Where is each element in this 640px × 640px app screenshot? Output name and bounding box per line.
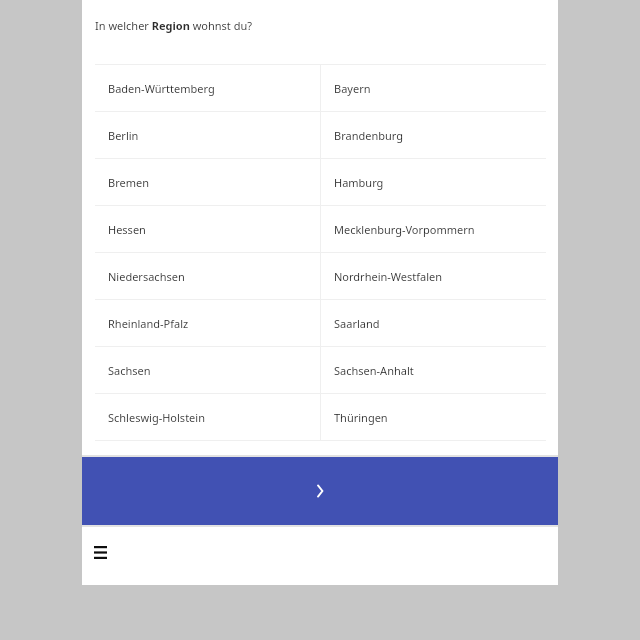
button[interactable]: Hamburg <box>321 159 546 205</box>
staticText: Thüringen <box>334 410 388 425</box>
staticText: Sachsen-Anhalt <box>334 363 414 378</box>
staticText: Bremen <box>108 175 149 190</box>
button[interactable]: Thüringen <box>321 394 546 440</box>
staticText: Schleswig-Holstein <box>108 410 205 425</box>
staticText: Sachsen <box>108 363 151 378</box>
staticText: Hamburg <box>334 175 384 190</box>
button[interactable]: Hessen <box>95 206 320 252</box>
button[interactable]: Schleswig-Holstein <box>95 394 320 440</box>
button[interactable]: Sachsen-Anhalt <box>321 347 546 393</box>
staticText: Niedersachsen <box>108 269 185 284</box>
button[interactable]: Nordrhein-Westfalen <box>321 253 546 299</box>
staticText: Baden-Württemberg <box>108 81 215 96</box>
staticText: In welcher Region wohnst du? <box>95 18 253 33</box>
button[interactable]: Bayern <box>321 65 546 111</box>
button[interactable]: Menü <box>87 539 113 565</box>
staticText: Rheinland-Pfalz <box>108 316 189 331</box>
button[interactable]: Mecklenburg-Vorpommern <box>321 206 546 252</box>
button[interactable]: Sachsen <box>95 347 320 393</box>
staticText: Saarland <box>334 316 380 331</box>
button[interactable]: Berlin <box>95 112 320 158</box>
button[interactable]: Bremen <box>95 159 320 205</box>
button[interactable]: Saarland <box>321 300 546 346</box>
staticText: Brandenburg <box>334 128 403 143</box>
button[interactable]: Niedersachsen <box>95 253 320 299</box>
staticText: Berlin <box>108 128 139 143</box>
button[interactable]: Weiter <box>82 457 558 525</box>
staticText: Mecklenburg-Vorpommern <box>334 222 475 237</box>
staticText: Bayern <box>334 81 371 96</box>
button[interactable]: Brandenburg <box>321 112 546 158</box>
staticText: Nordrhein-Westfalen <box>334 269 443 284</box>
button[interactable]: Baden-Württemberg <box>95 65 320 111</box>
button[interactable]: Rheinland-Pfalz <box>95 300 320 346</box>
staticText: Hessen <box>108 222 146 237</box>
